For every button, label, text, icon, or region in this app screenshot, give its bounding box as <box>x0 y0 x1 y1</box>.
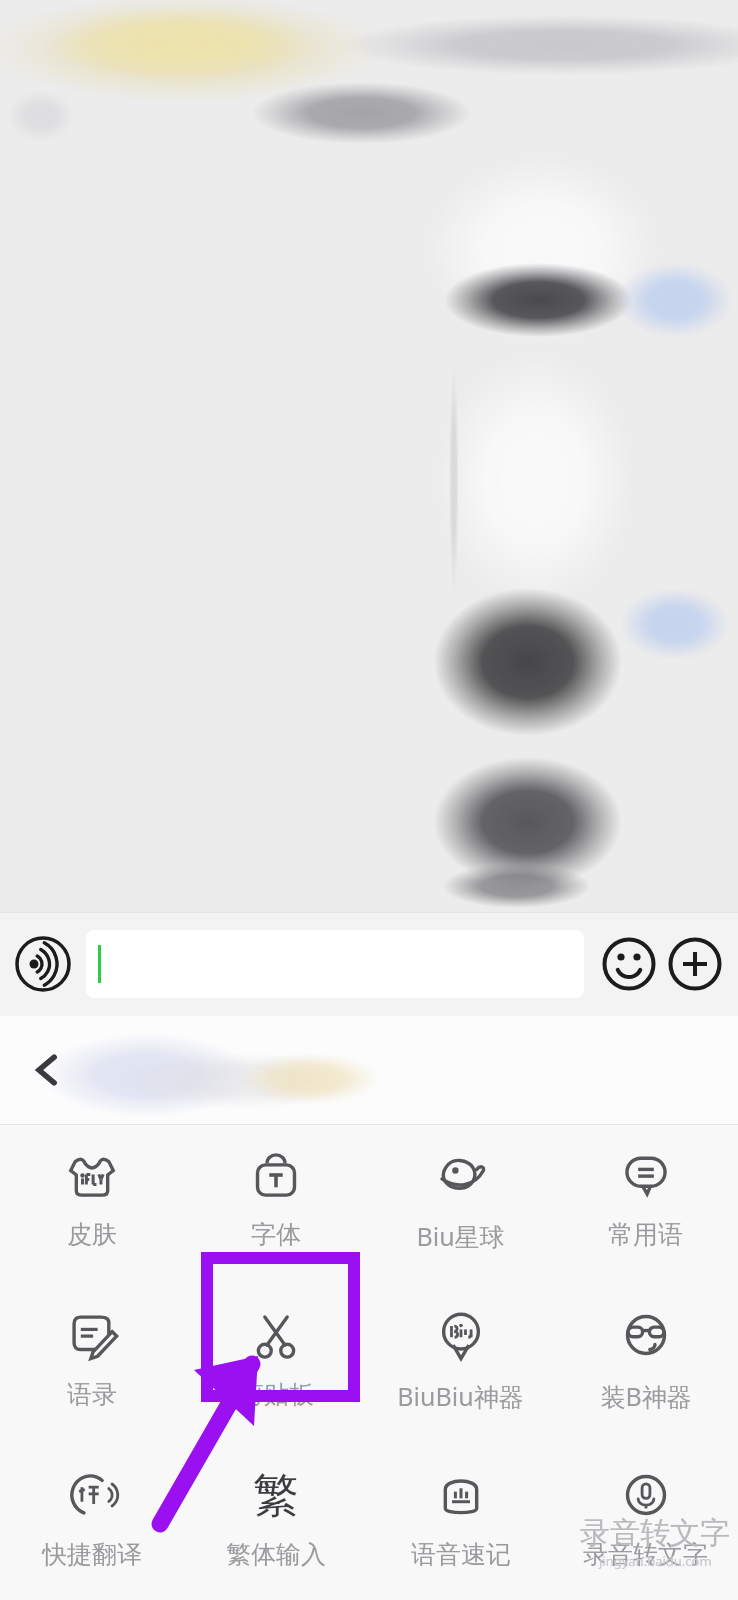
button[interactable]: BiuBiu神器 <box>368 1285 553 1445</box>
button[interactable] <box>86 930 584 998</box>
button[interactable]: Biu星球 <box>368 1125 553 1285</box>
button[interactable]: 繁 <box>184 1445 368 1600</box>
staticText: 录音转文字 <box>580 1514 730 1552</box>
button[interactable]: 语录 <box>0 1285 184 1445</box>
staticText: 字体 <box>251 1219 301 1250</box>
staticText: 快捷翻译 <box>42 1539 142 1570</box>
button[interactable]: Voice input <box>14 935 72 993</box>
staticText: 语音速记 <box>411 1539 511 1570</box>
button[interactable]: 录音转文字 <box>553 1445 738 1600</box>
staticText: 语录 <box>67 1379 117 1410</box>
button[interactable]: 快捷翻译 <box>0 1445 184 1600</box>
staticText: 皮肤 <box>67 1219 117 1250</box>
staticText: 装B神器 <box>600 1379 692 1413</box>
button[interactable]: More <box>666 935 724 993</box>
staticText: Biu星球 <box>416 1219 505 1253</box>
button[interactable]: 字体 <box>184 1125 368 1285</box>
staticText: 常用语 <box>608 1219 683 1250</box>
staticText: 繁体输入 <box>226 1539 326 1570</box>
button[interactable]: Emoji <box>600 935 658 993</box>
staticText: 剪贴板 <box>239 1379 314 1410</box>
button[interactable]: 装B神器 <box>553 1285 738 1445</box>
button[interactable]: 剪贴板 <box>184 1285 368 1445</box>
button[interactable]: 常用语 <box>553 1125 738 1285</box>
staticText: BiuBiu神器 <box>397 1379 524 1413</box>
button[interactable]: 语音速记 <box>368 1445 553 1600</box>
staticText: 繁 <box>253 1467 299 1523</box>
button[interactable]: Back <box>16 1016 78 1124</box>
staticText: jingyan.baidu.com <box>599 1552 712 1570</box>
button[interactable]: 皮肤 <box>0 1125 184 1285</box>
staticText: 录音转文字 <box>583 1539 708 1570</box>
